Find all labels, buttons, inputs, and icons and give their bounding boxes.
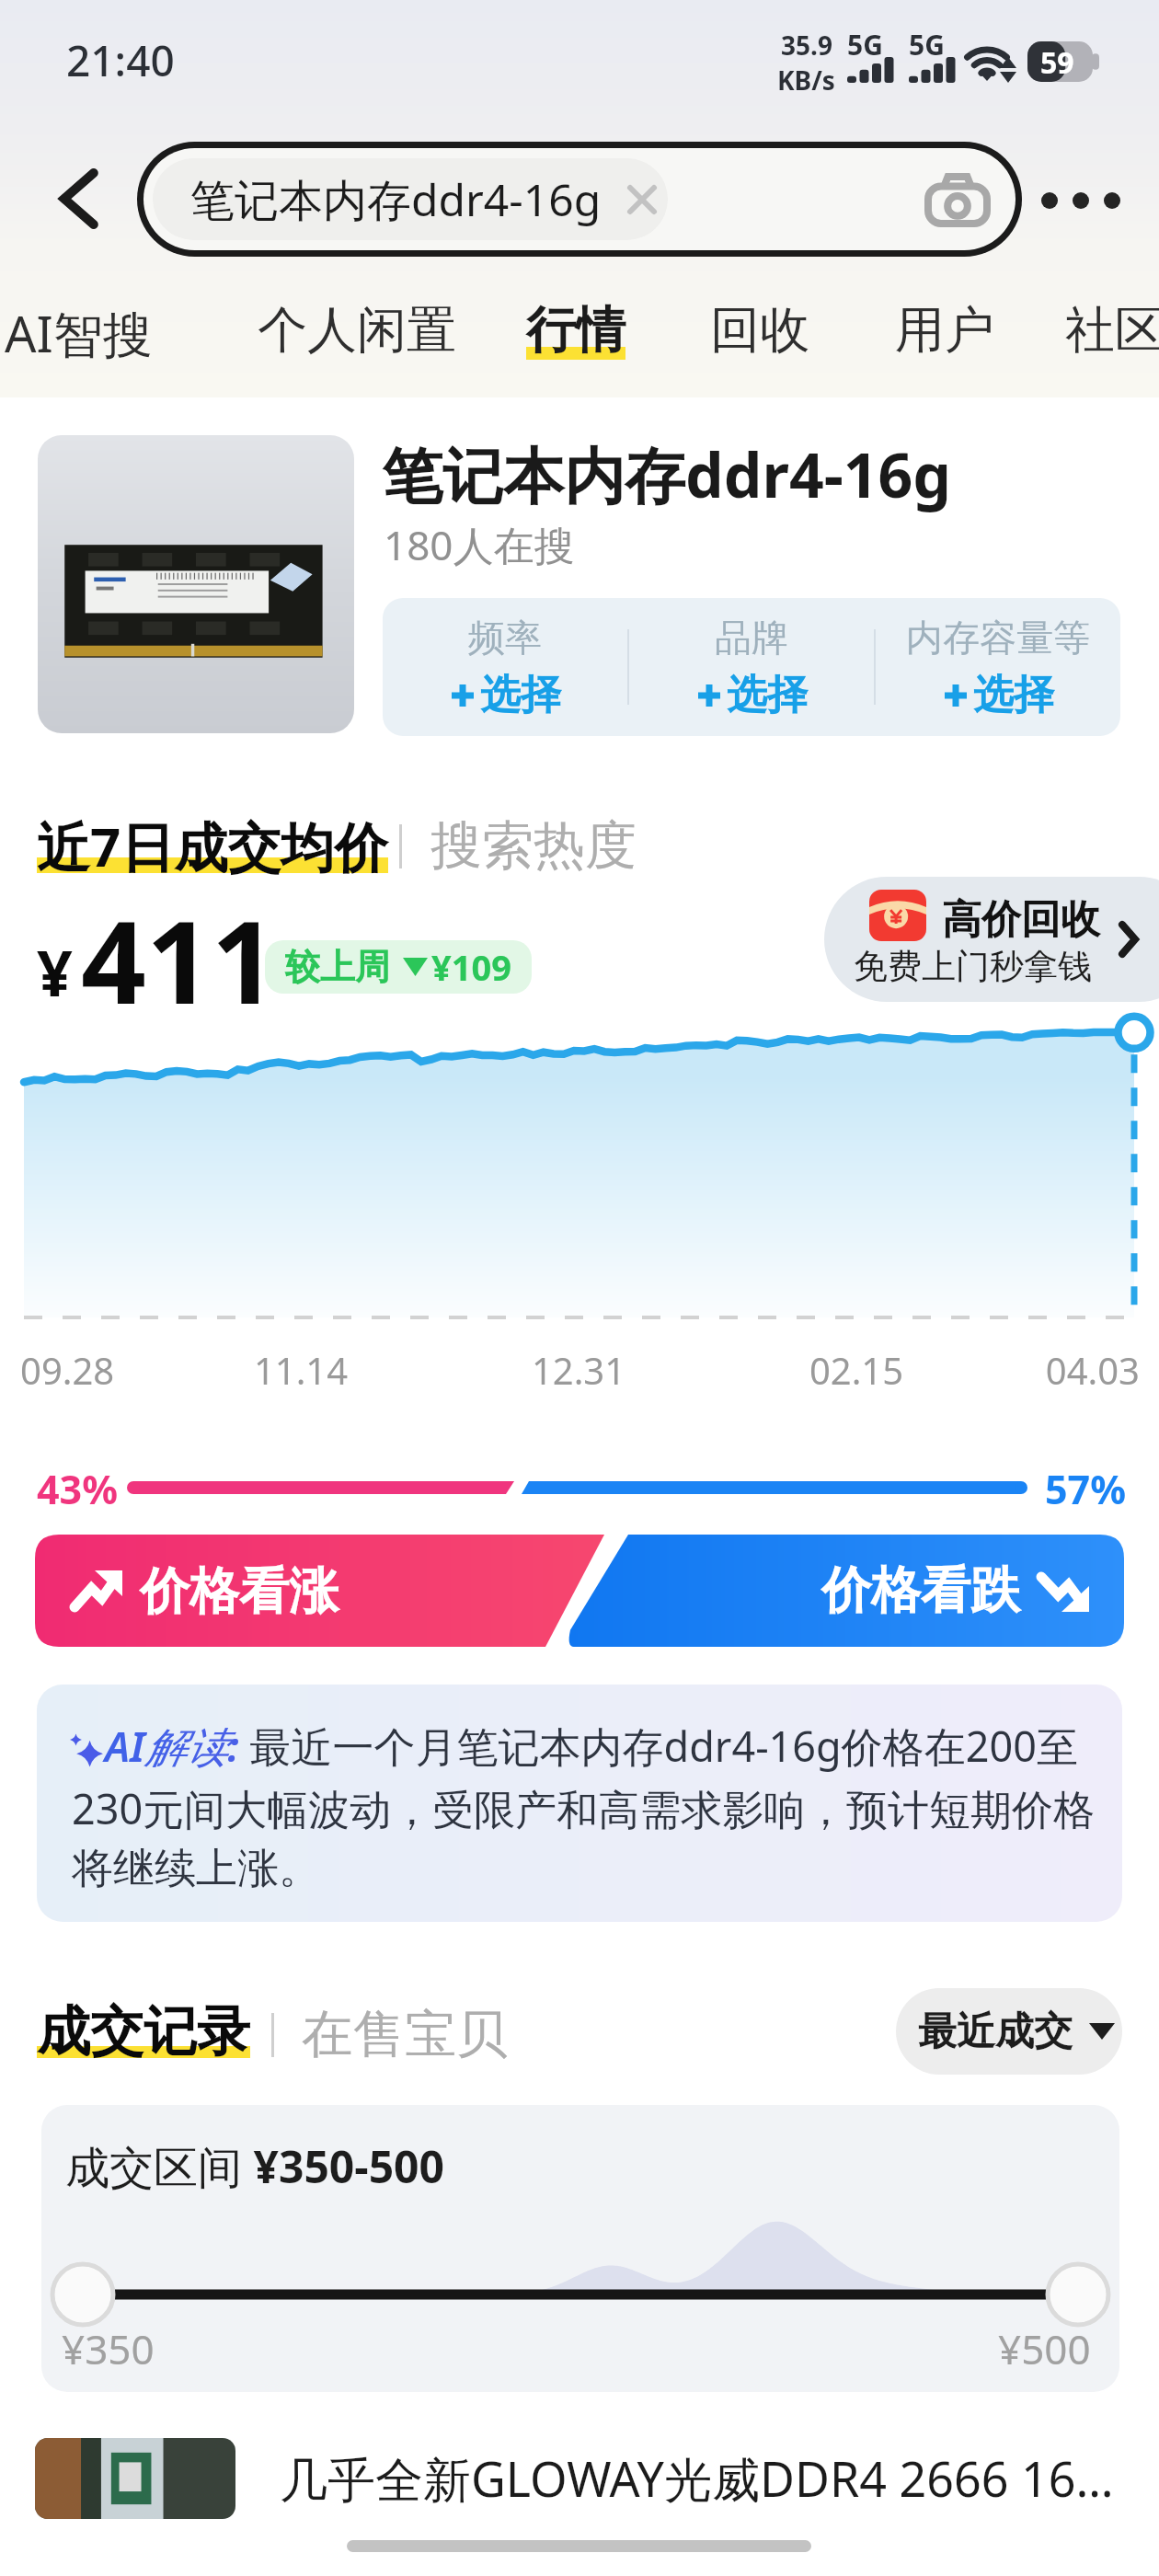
- staticText: 价格看跌: [821, 1559, 1020, 1622]
- button[interactable]: [38, 435, 354, 733]
- button[interactable]: 内存容量等: [876, 598, 1120, 736]
- staticText: 11.14: [200, 1345, 402, 1395]
- button[interactable]: 回收: [710, 299, 809, 362]
- staticText: 5G: [909, 26, 945, 63]
- staticText: 免费上门秒拿钱: [854, 945, 1092, 988]
- staticText: 行情: [526, 299, 625, 362]
- staticText: 用户: [895, 299, 994, 362]
- staticText: 230元间大幅波动，受限产和高需求影响，预计短期价格: [72, 1780, 1096, 1836]
- button[interactable]: 在售宝贝: [302, 2002, 508, 2067]
- button[interactable]: 个人闲置: [258, 299, 456, 362]
- staticText: ¥350: [62, 2321, 155, 2376]
- button[interactable]: Back: [28, 156, 129, 241]
- staticText: AI解读: 最近一个月笔记本内存ddr4-16g价格在200至: [105, 1718, 1078, 1774]
- staticText: 选择: [973, 670, 1054, 720]
- button[interactable]: 用户: [895, 299, 994, 362]
- staticText: AI智搜: [5, 299, 153, 367]
- button[interactable]: 最近成交: [896, 1988, 1122, 2075]
- staticText: 价格看涨: [140, 1560, 339, 1623]
- staticText: 09.28: [20, 1345, 223, 1395]
- staticText: 高价回收: [942, 895, 1100, 945]
- staticText: 选择: [727, 670, 808, 720]
- staticText: 12.31: [477, 1345, 680, 1395]
- button[interactable]: Search by image: [925, 173, 990, 226]
- button[interactable]: 几乎全新GLOWAY光威DDR4 2666 16G…: [0, 2429, 1159, 2530]
- staticText: ¥: [37, 929, 73, 1015]
- button[interactable]: [35, 1535, 587, 1647]
- button[interactable]: 笔记本内存ddr4-16g: [143, 148, 1016, 250]
- staticText: 04.03: [937, 1345, 1140, 1395]
- staticText: 回收: [710, 299, 809, 362]
- staticText: 57%: [1045, 1462, 1126, 1516]
- staticText: 笔记本内存ddr4-16g: [190, 169, 602, 230]
- button[interactable]: 行情: [526, 299, 625, 362]
- staticText: ¥500: [998, 2321, 1091, 2376]
- staticText: KB/s: [777, 63, 835, 98]
- button[interactable]: 频率: [383, 598, 627, 736]
- button[interactable]: 近7日成交均价: [37, 810, 388, 882]
- button[interactable]: 社区: [1065, 299, 1159, 362]
- staticText: 成交记录: [37, 1998, 250, 2065]
- staticText: 将继续上涨。: [72, 1843, 320, 1895]
- staticText: 成交区间 ¥350-500: [65, 2136, 445, 2197]
- staticText: 社区: [1065, 299, 1159, 362]
- staticText: 品牌: [715, 615, 788, 661]
- staticText: 59: [1040, 42, 1074, 83]
- staticText: 02.15: [755, 1345, 958, 1395]
- staticText: 较上周: [285, 945, 390, 989]
- staticText: 几乎全新GLOWAY光威DDR4 2666 16G…: [280, 2445, 1126, 2511]
- staticText: 21:40: [66, 31, 175, 89]
- staticText: 频率: [468, 615, 542, 661]
- button[interactable]: More options: [1029, 158, 1132, 243]
- button[interactable]: AI解读: 最近一个月笔记本内存ddr4-16g价格在200至: [37, 1685, 1122, 1922]
- staticText: 笔记本内存ddr4-16g: [382, 432, 952, 515]
- staticText: 180人在搜: [384, 517, 575, 572]
- staticText: 内存容量等: [906, 615, 1090, 661]
- staticText: 411: [81, 881, 277, 1037]
- staticText: 近7日成交均价: [37, 810, 388, 882]
- button[interactable]: 成交记录: [37, 1998, 250, 2065]
- staticText: 5G: [847, 26, 883, 63]
- staticText: 个人闲置: [258, 299, 456, 362]
- button[interactable]: 高价回收: [824, 877, 1159, 1002]
- staticText: 最近成交: [918, 2007, 1073, 2056]
- button[interactable]: AI智搜: [5, 299, 153, 367]
- button[interactable]: [587, 1535, 1124, 1647]
- staticText: ¥109: [431, 943, 511, 991]
- staticText: 选择: [480, 670, 561, 720]
- staticText: 35.9: [781, 28, 832, 63]
- button[interactable]: 品牌: [629, 598, 874, 736]
- staticText: 43%: [37, 1462, 118, 1516]
- button[interactable]: 搜索热度: [430, 813, 637, 879]
